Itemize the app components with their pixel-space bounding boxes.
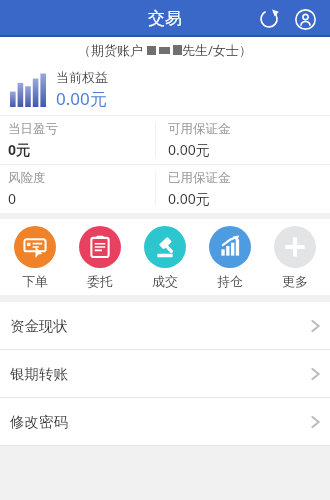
staticText: 0元 xyxy=(8,140,31,159)
button[interactable]: Account xyxy=(288,2,322,36)
staticText: 先生/女士） xyxy=(182,41,252,59)
staticText: 风险度 xyxy=(8,170,46,186)
button[interactable]: Refresh xyxy=(252,2,286,36)
staticText: 资金现状 xyxy=(10,317,68,335)
staticText: 成交 xyxy=(152,273,178,289)
button[interactable]: 成交 xyxy=(135,224,195,291)
button[interactable]: 资金现状 xyxy=(0,302,330,349)
staticText: 当前权益 xyxy=(56,69,108,85)
staticText: 已用保证金 xyxy=(168,170,231,186)
staticText: （期货账户 xyxy=(78,42,143,58)
button[interactable]: 持仓 xyxy=(200,224,260,291)
staticText: 下单 xyxy=(22,273,48,289)
button[interactable]: 下单 xyxy=(5,224,65,291)
button[interactable]: 银期转账 xyxy=(0,350,330,397)
staticText: 可用保证金 xyxy=(168,121,231,137)
staticText: 0.00元 xyxy=(168,140,210,159)
button[interactable]: 委托 xyxy=(70,224,130,291)
staticText: 委托 xyxy=(87,273,113,289)
button[interactable]: 修改密码 xyxy=(0,398,330,445)
staticText: 0.00元 xyxy=(168,189,210,208)
staticText: 当日盈亏 xyxy=(8,121,58,137)
staticText: 交易 xyxy=(148,8,182,29)
staticText: 0 xyxy=(8,189,17,208)
staticText: 更多 xyxy=(282,273,308,289)
staticText: 银期转账 xyxy=(10,365,68,383)
button[interactable]: 更多 xyxy=(265,224,325,291)
staticText: 持仓 xyxy=(217,273,243,289)
staticText: 修改密码 xyxy=(10,413,68,431)
staticText: 0.00元 xyxy=(56,87,107,110)
